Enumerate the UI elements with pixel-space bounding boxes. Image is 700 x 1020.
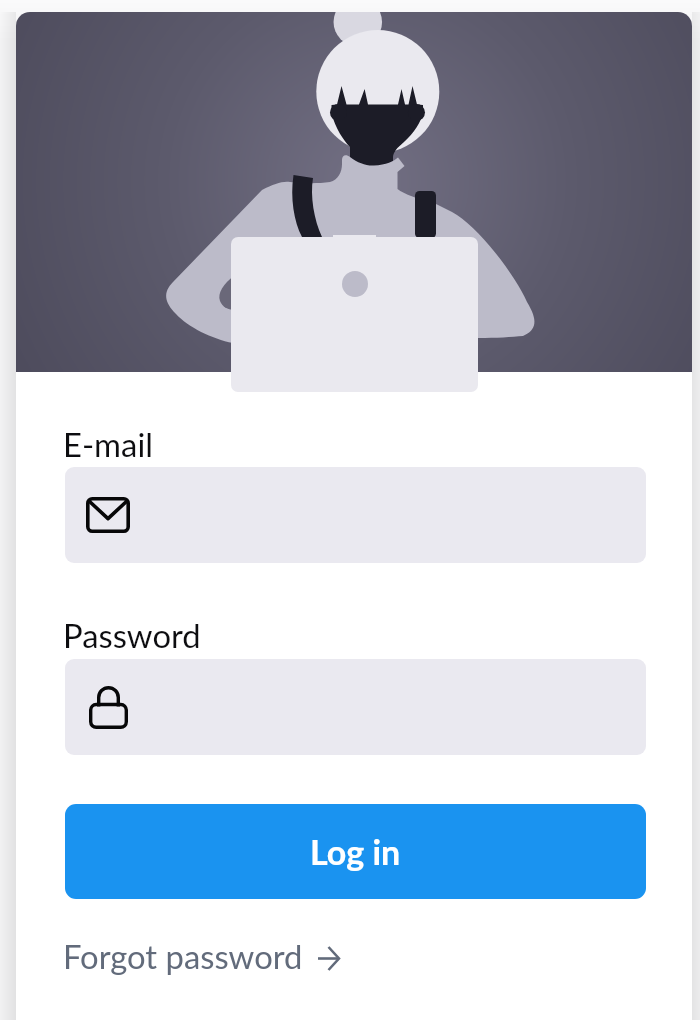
- button[interactable]: E-mail: [65, 467, 646, 563]
- button[interactable]: Log in: [65, 804, 646, 899]
- button[interactable]: Password: [65, 659, 646, 755]
- staticText: Forgot password: [63, 937, 303, 976]
- staticText: Log in: [310, 831, 401, 872]
- other: E-mail: [86, 497, 130, 533]
- staticText: E-mail: [63, 425, 154, 464]
- button[interactable]: Forgot password: [55, 932, 348, 982]
- staticText: Password: [63, 616, 201, 655]
- other: Forgot password: [318, 947, 340, 970]
- other: Password: [89, 686, 128, 729]
